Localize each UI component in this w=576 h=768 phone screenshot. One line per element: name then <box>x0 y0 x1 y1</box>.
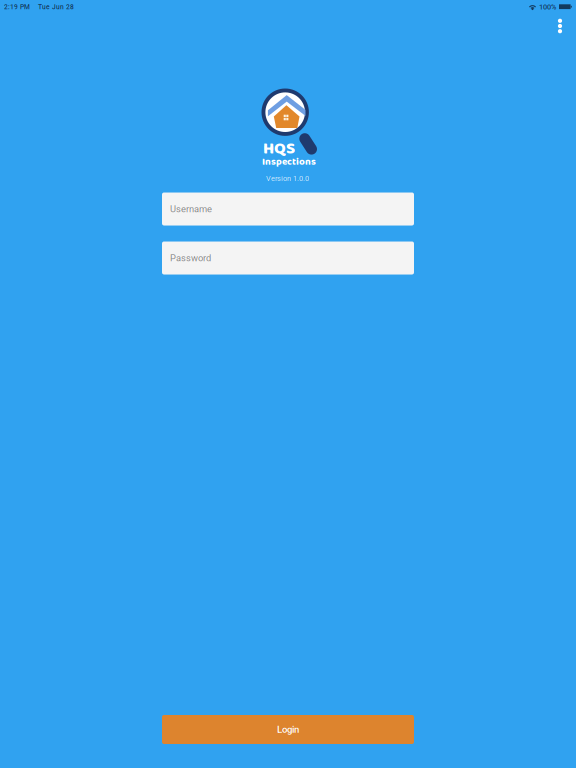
staticText: Tue Jun 28 <box>38 3 74 11</box>
staticText: HQS <box>263 136 295 162</box>
staticText: Version 1.0.0 <box>266 174 309 183</box>
staticText: Password <box>170 252 211 263</box>
button[interactable]: Password <box>162 241 414 274</box>
staticText: Username <box>170 203 212 214</box>
button[interactable]: Username <box>162 192 414 225</box>
staticText: 100% <box>539 3 556 11</box>
staticText: Login <box>277 724 299 735</box>
button[interactable]: More options <box>548 13 572 39</box>
staticText: Inspections <box>262 154 316 170</box>
staticText: 2:19 PM <box>4 3 30 11</box>
button[interactable]: Login <box>162 715 414 744</box>
